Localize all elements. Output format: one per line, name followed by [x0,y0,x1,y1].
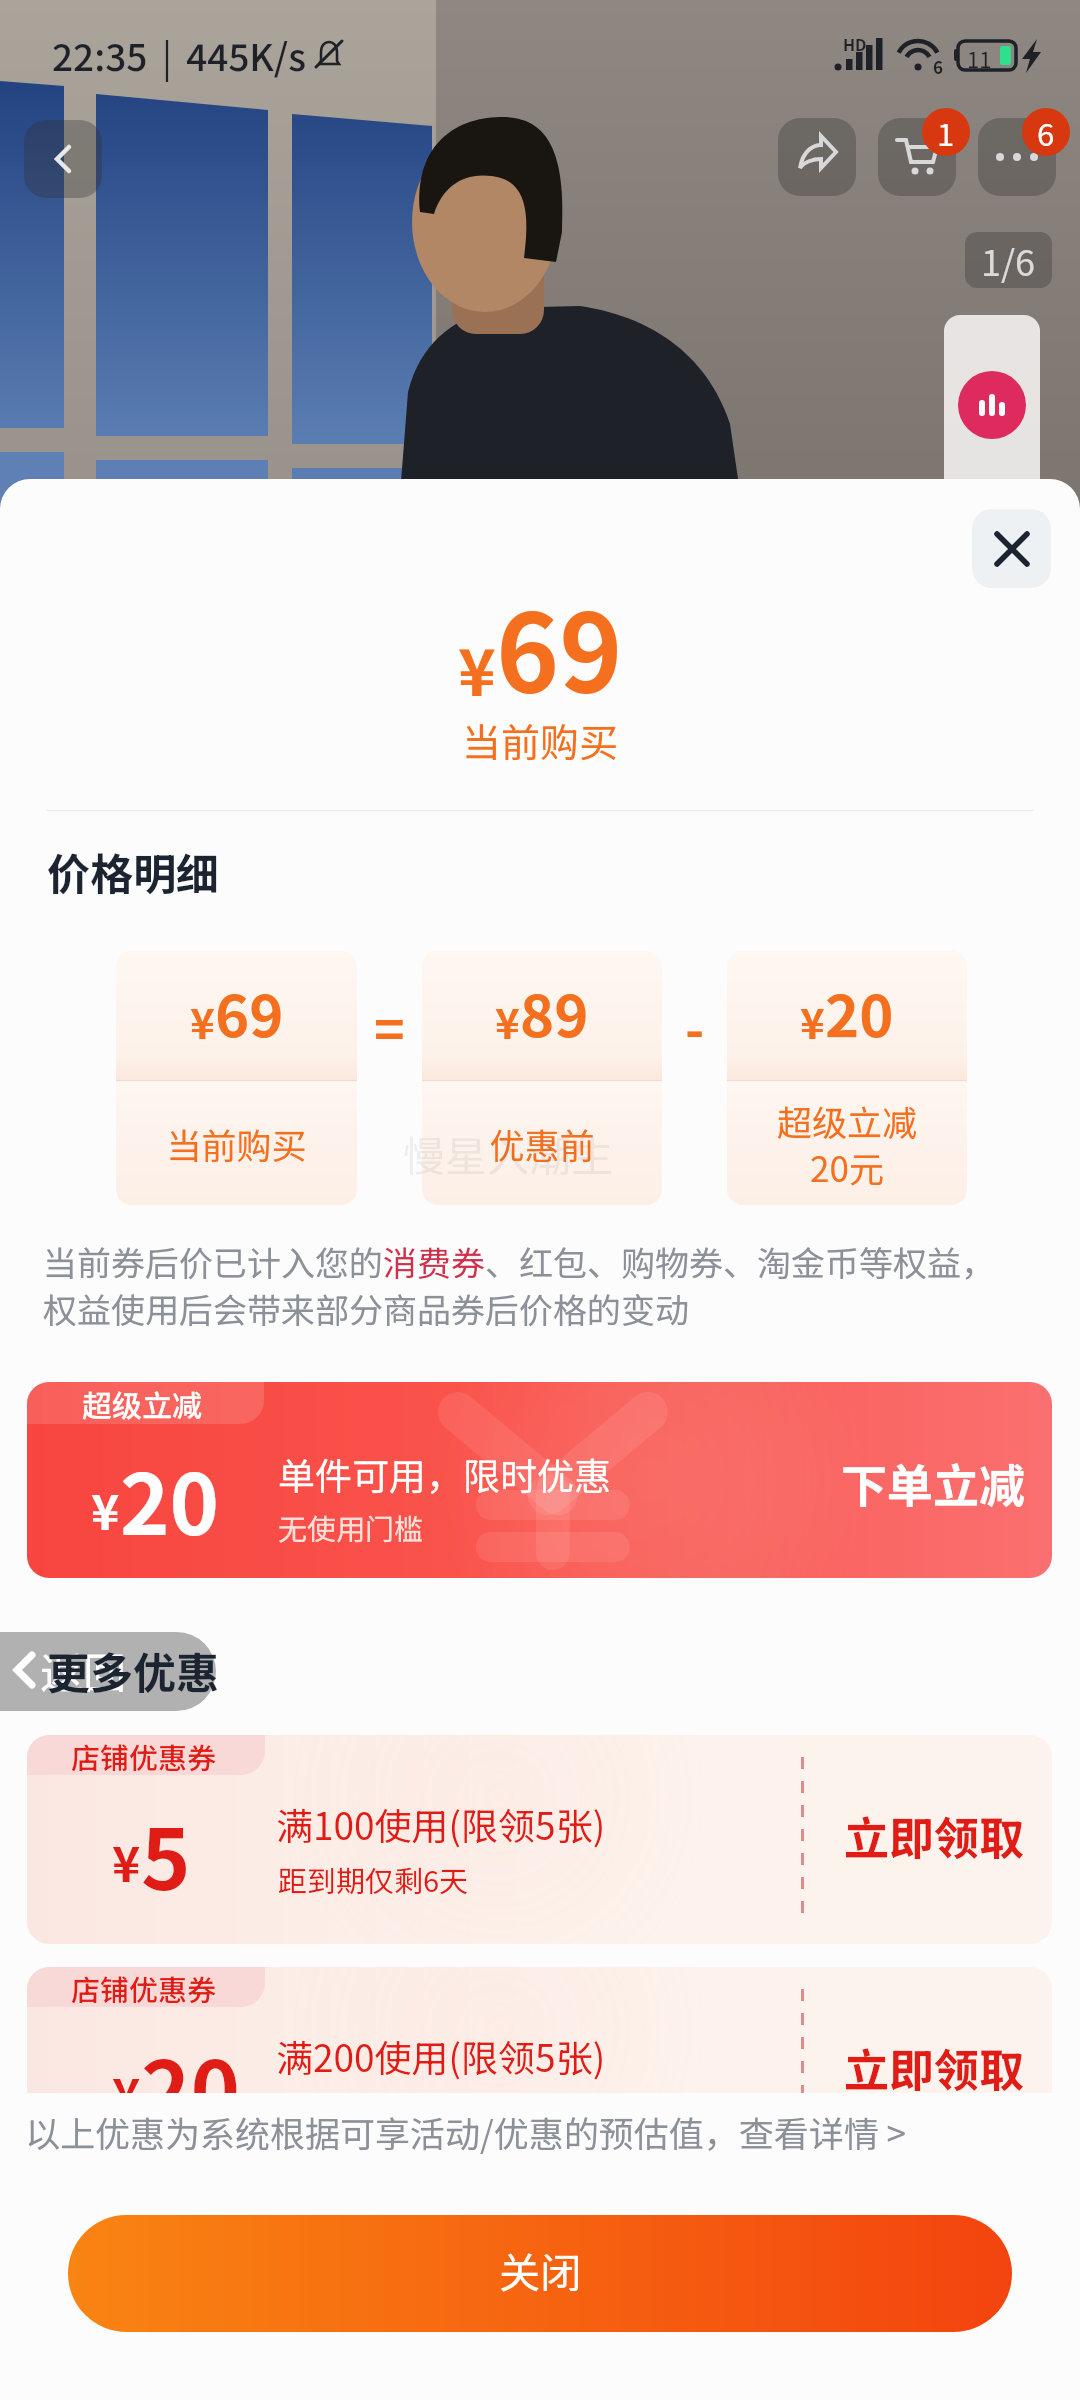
staticText: 20 [825,971,894,1055]
button[interactable]: Share [778,118,856,196]
staticText: 店铺优惠券 [71,1735,217,1775]
staticText: ¥ [800,990,825,1051]
staticText: | [162,28,172,82]
staticText: 慢星入潮生 [403,1123,614,1184]
staticText: 69 [215,971,284,1055]
staticText: 满200使用(限领5张) [276,2029,606,2083]
button[interactable]: ¥ [727,951,967,1205]
staticText: 价格明细 [47,840,219,902]
staticText: ¥ [458,622,496,715]
button[interactable]: ¥ [116,951,357,1205]
button[interactable]: 超级立减 [27,1382,1052,1578]
staticText: ¥ [190,990,215,1051]
staticText: 445K/s [186,28,307,82]
staticText: 距到期仅剩6天 [278,1858,469,1900]
button[interactable]: Back [24,120,102,198]
staticText: 立即领取 [844,2035,1025,2100]
button[interactable]: More [978,118,1056,196]
staticText: 更多优惠 [47,1639,219,1701]
button[interactable]: Back [0,1632,216,1711]
staticText: 返回 [40,1639,126,1701]
staticText: 1/6 [981,234,1036,286]
staticText: 满100使用(限领5张) [276,1797,606,1851]
staticText: 优惠前 [422,1118,662,1169]
staticText: 20 [141,2025,241,2147]
button[interactable]: 关闭 [68,2215,1012,2332]
button[interactable]: ¥ [422,951,662,1205]
staticText: - [685,989,705,1064]
staticText: 当前券后价已计入您的消费券、红包、购物券、淘金币等权益， 权益使用后会带来部分商… [43,1237,995,1333]
button[interactable]: 店铺优惠券 [27,1735,1052,1944]
staticText: 下单立减 [841,1450,1025,1517]
staticText: 1 [937,110,955,155]
staticText: = [374,989,405,1064]
staticText: HD [843,32,867,55]
staticText: 89 [520,971,589,1055]
staticText: 11 [967,42,992,74]
staticText: 单件可用，限时优惠 [278,1447,611,1501]
staticText: ¥ [112,1826,141,1896]
staticText: ¥ [112,2058,141,2128]
button[interactable]: Close [972,509,1051,588]
staticText: 6 [933,54,944,79]
staticText: 无使用门槛 [278,1506,424,1548]
staticText: ¥ [91,1474,120,1544]
staticText: 超级立减 20元 [727,1095,967,1192]
staticText: 关闭 [499,2240,581,2299]
staticText: 当前购买 [116,1118,357,1169]
staticText: ¥ [495,990,520,1051]
staticText: 立即领取 [844,1803,1025,1868]
button[interactable]: 店铺优惠券 [27,1967,1052,2176]
staticText: 店铺优惠券 [71,1967,217,2007]
staticText: 22:35 [52,28,148,82]
staticText: 超级立减 [82,1382,202,1424]
staticText: 5 [141,1793,191,1915]
staticText: 69 [496,568,623,723]
button[interactable]: Cart [878,118,956,196]
staticText: 距到期仅剩6天 [278,2090,469,2132]
staticText: 以上优惠为系统根据可享活动/优惠的预估值，查看详情 > [25,2106,906,2157]
staticText: 6 [1037,110,1055,155]
staticText: 20 [120,1438,220,1560]
staticText: 当前购买 [0,712,1080,768]
